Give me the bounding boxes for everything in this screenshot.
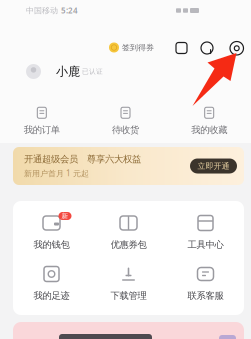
- button[interactable]: 立即开通: [190, 158, 237, 173]
- staticText: 我的足迹: [33, 290, 69, 301]
- staticText: 优惠券包: [110, 239, 146, 250]
- staticText: 我的收藏: [191, 124, 227, 136]
- staticText: 下载管理: [110, 290, 146, 301]
- staticText: 开通超级会员 尊享六大权益: [24, 153, 141, 165]
- staticText: 新用户首月 1 元起: [24, 168, 89, 178]
- button[interactable]: 小鹿: [26, 64, 103, 79]
- button[interactable]: 下载管理: [90, 259, 167, 310]
- staticText: 工具中心: [187, 239, 223, 250]
- staticText: 中国移动: [26, 6, 58, 15]
- button[interactable]: Scan: [174, 40, 189, 55]
- staticText: 待收货: [112, 124, 139, 136]
- button[interactable]: 优惠券包: [90, 208, 167, 259]
- button[interactable]: 签到得券: [109, 42, 154, 52]
- staticText: 5:24: [61, 5, 78, 16]
- staticText: 小鹿: [56, 64, 80, 79]
- staticText: 联系客服: [187, 290, 223, 301]
- staticText: 新: [61, 212, 68, 220]
- button[interactable]: 我的订单: [0, 104, 84, 138]
- staticText: 我的订单: [24, 124, 60, 136]
- button[interactable]: 工具中心: [167, 208, 244, 259]
- staticText: 已认证: [82, 67, 103, 76]
- button[interactable]: 我的足迹: [13, 259, 90, 310]
- button[interactable]: 我的收藏: [167, 104, 251, 138]
- staticText: 签到得券: [122, 43, 154, 52]
- staticText: 我的钱包: [33, 239, 69, 250]
- button[interactable]: Settings: [228, 39, 245, 57]
- button[interactable]: Customer service: [199, 40, 215, 56]
- button[interactable]: 联系客服: [167, 259, 244, 310]
- staticText: 立即开通: [197, 161, 229, 171]
- button[interactable]: 待收货: [84, 104, 167, 138]
- button[interactable]: 新: [13, 208, 90, 259]
